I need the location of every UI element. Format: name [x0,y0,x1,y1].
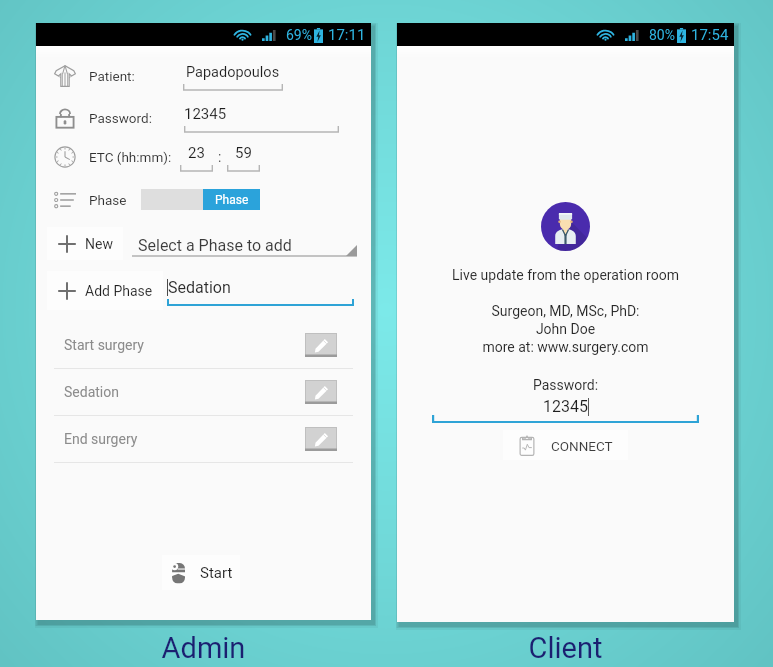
staticText: Admin [36,631,371,665]
button[interactable]: Papadopoulos [183,61,283,91]
staticText: Surgeon, MD, MSc, PhD: John Doe more at:… [397,303,734,356]
staticText: End surgery [64,431,138,447]
button[interactable]: 12345 [432,397,699,423]
staticText: New [85,236,113,252]
staticText: ETC (hh:mm): [89,149,172,165]
staticText: Phase [215,193,249,207]
button[interactable]: End surgery [36,416,371,463]
staticText: Add Phase [85,283,153,299]
staticText: Select a Phase to add [138,236,292,255]
staticText: Papadopoulos [186,64,280,81]
staticText: 80% [649,27,675,43]
staticText: 17:11 [328,26,366,44]
button[interactable]: Sedation [36,369,371,416]
button[interactable]: Phase [141,189,260,210]
staticText: Start [200,564,233,582]
button[interactable]: CONNECT [503,430,628,460]
other: Edit [305,380,337,404]
staticText: Sedation [168,278,231,297]
staticText: 17:54 [691,26,729,44]
staticText: Password: [397,377,734,393]
staticText: Client [397,631,734,665]
button[interactable]: Add Phase [47,271,163,310]
staticText: Sedation [64,384,119,400]
staticText: 69% [286,27,312,43]
staticText: 12345 [184,105,227,123]
staticText: 23 [188,144,205,162]
button[interactable]: 59 [227,142,260,172]
other: Edit [305,333,337,357]
button[interactable]: New [47,227,123,260]
staticText: Password: [89,110,152,126]
other: Edit [305,427,337,451]
staticText: 59 [235,144,252,162]
staticText: Start surgery [64,337,144,353]
staticText: Patient: [89,68,135,84]
staticText: CONNECT [551,438,613,454]
button[interactable]: Start surgery [36,322,371,369]
staticText: Live update from the operation room [397,267,734,283]
staticText: Phase [89,192,127,208]
button[interactable]: Start [162,555,240,590]
button[interactable]: 23 [180,142,213,172]
staticText: 12345 [543,397,588,416]
button[interactable]: Sedation [167,271,354,310]
button[interactable]: Select a Phase to add [132,227,357,260]
button[interactable]: 12345 [184,103,339,133]
staticText: : [218,149,222,165]
